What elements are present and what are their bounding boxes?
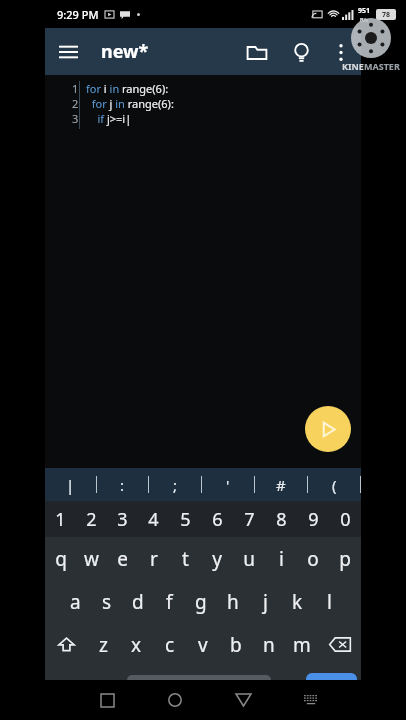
button[interactable]: Open folder — [235, 30, 279, 74]
button[interactable]: n — [252, 623, 285, 666]
button[interactable]: p — [329, 537, 361, 580]
staticText: a — [70, 589, 81, 615]
button[interactable]: g — [185, 580, 217, 623]
staticText: k — [292, 589, 303, 615]
button[interactable]: x — [120, 623, 153, 666]
button[interactable]: Run — [305, 406, 351, 452]
button[interactable]: 9 — [297, 501, 329, 537]
button[interactable]: z — [87, 623, 120, 666]
staticText: o — [307, 546, 319, 572]
button[interactable]: u — [233, 537, 265, 580]
button[interactable]: More options — [323, 34, 359, 70]
staticText: g — [195, 589, 207, 615]
button[interactable]: s — [91, 580, 122, 623]
button[interactable]: e — [107, 537, 138, 580]
button[interactable]: Shift — [45, 623, 87, 666]
button[interactable]: l — [313, 580, 345, 623]
button[interactable]: ( — [308, 468, 360, 501]
button[interactable]: f — [153, 580, 185, 623]
staticText: l — [327, 589, 332, 615]
staticText: 3 — [72, 111, 79, 126]
button[interactable]: y — [201, 537, 233, 580]
button[interactable]: j — [249, 580, 281, 623]
staticText: if j>=i| — [86, 111, 132, 126]
button[interactable]: 1 — [45, 501, 76, 537]
button[interactable]: k — [281, 580, 313, 623]
staticText: B/s — [360, 16, 369, 23]
button[interactable]: q — [45, 537, 76, 580]
staticText: 8 — [276, 507, 287, 532]
button[interactable]: Enter — [306, 673, 357, 707]
staticText: . — [284, 679, 289, 702]
staticText: 78 — [382, 10, 391, 20]
staticText: # — [276, 475, 286, 495]
button[interactable]: 7 — [233, 501, 265, 537]
button[interactable]: # — [255, 468, 307, 501]
staticText: MASTER — [364, 60, 400, 72]
staticText: 9:29 PM — [57, 7, 99, 22]
button[interactable]: w — [76, 537, 107, 580]
button[interactable]: 4 — [138, 501, 169, 537]
button[interactable]: : — [97, 468, 148, 501]
staticText: m — [293, 632, 311, 658]
button[interactable]: Hint — [279, 30, 323, 74]
staticText: 9 — [308, 507, 319, 532]
staticText: ; — [173, 475, 178, 495]
staticText: q — [55, 546, 67, 572]
button[interactable]: , — [96, 666, 127, 714]
button[interactable]: 5 — [169, 501, 201, 537]
staticText: p — [339, 546, 351, 572]
staticText: r — [150, 546, 158, 572]
button[interactable]: 6 — [201, 501, 233, 537]
button[interactable]: t — [169, 537, 201, 580]
staticText: 2 — [72, 96, 79, 111]
button[interactable]: v — [186, 623, 219, 666]
button[interactable]: b — [219, 623, 252, 666]
button[interactable]: Back — [209, 680, 277, 720]
button[interactable]: ' — [202, 468, 254, 501]
button[interactable]: | — [45, 468, 96, 501]
button[interactable]: c — [153, 623, 186, 666]
staticText: | — [66, 475, 75, 495]
button[interactable]: 3 — [107, 501, 138, 537]
button[interactable]: Menu — [45, 29, 91, 75]
button[interactable]: 8 — [265, 501, 297, 537]
button[interactable]: ; — [149, 468, 201, 501]
button[interactable]: m — [285, 623, 318, 666]
button[interactable]: 0 — [329, 501, 361, 537]
staticText: e — [117, 546, 128, 572]
button[interactable]: 2 — [76, 501, 107, 537]
staticText: z — [99, 632, 108, 658]
staticText: u — [243, 546, 255, 572]
staticText: ( — [332, 475, 337, 495]
staticText: f — [166, 589, 173, 615]
button[interactable]: r — [138, 537, 169, 580]
staticText: s — [102, 589, 112, 615]
staticText: d — [132, 589, 144, 615]
button[interactable]: . — [271, 666, 302, 714]
button[interactable]: h — [217, 580, 249, 623]
button[interactable]: Keyboard switcher — [277, 680, 345, 720]
button[interactable]: a — [60, 580, 91, 623]
button[interactable]: o — [297, 537, 329, 580]
staticText: c — [165, 632, 175, 658]
staticText: w — [84, 546, 99, 572]
button[interactable]: Space — [127, 675, 271, 705]
staticText: y — [212, 546, 222, 572]
staticText: 2 — [86, 507, 97, 532]
button[interactable]: Backspace — [318, 623, 361, 666]
button[interactable]: Recents — [73, 680, 141, 720]
staticText: v — [198, 632, 208, 658]
staticText: for j in range(6): — [86, 96, 174, 111]
staticText: 7 — [244, 507, 255, 532]
staticText: : — [120, 475, 125, 495]
staticText: 0 — [340, 507, 351, 532]
staticText: 3 — [117, 507, 128, 532]
button[interactable]: d — [122, 580, 153, 623]
button[interactable]: ?123 — [45, 666, 96, 714]
button[interactable]: i — [265, 537, 297, 580]
staticText: KINE — [342, 60, 364, 72]
button[interactable]: Home — [141, 680, 209, 720]
staticText: for i in range(6): — [86, 81, 169, 96]
